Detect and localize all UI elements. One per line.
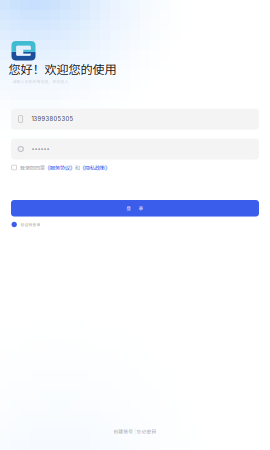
staticText: 登录即同意	[20, 163, 45, 171]
staticText: 创建账号	[113, 428, 133, 435]
staticText: 请输入手机号等信息，即可登入	[12, 78, 68, 84]
staticText: |	[133, 428, 136, 435]
staticText: 忘记密码	[136, 428, 156, 435]
staticText: 13993805305	[31, 115, 73, 122]
staticText: 录	[138, 205, 143, 212]
staticText: 《隐私政策》	[80, 163, 110, 171]
staticText: 和	[75, 163, 80, 171]
staticText: 您好！欢迎您的使用	[8, 60, 116, 78]
button[interactable]: 验证码登录	[11, 220, 259, 229]
button[interactable]: 忘记密码	[136, 428, 156, 435]
staticText: 《服务协议》	[45, 163, 75, 171]
staticText: ••••••	[32, 146, 50, 152]
button[interactable]: 创建账号	[113, 428, 133, 435]
button[interactable]: 登录即同意	[12, 163, 260, 172]
staticText: 登	[126, 205, 131, 212]
button[interactable]: 登	[11, 200, 259, 216]
staticText: 验证码登录	[20, 222, 40, 227]
